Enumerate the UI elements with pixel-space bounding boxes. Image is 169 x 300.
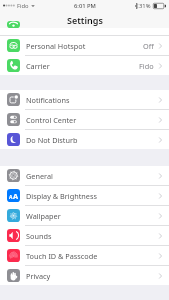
button[interactable]: General xyxy=(0,166,169,185)
staticText: Wallpaper xyxy=(26,211,61,221)
staticText: A xyxy=(13,191,19,201)
button[interactable]: Carrier xyxy=(0,56,169,75)
staticText: Off xyxy=(143,41,154,51)
staticText: Fido xyxy=(139,61,154,71)
staticText: 31% xyxy=(139,2,151,10)
staticText: A xyxy=(9,194,13,201)
staticText: Privacy xyxy=(26,271,51,281)
button[interactable]: Sounds xyxy=(0,226,169,245)
button[interactable]: Personal Hotspot xyxy=(0,36,169,55)
button[interactable]: Notifications xyxy=(0,90,169,109)
staticText: Touch ID & Passcode xyxy=(26,251,98,261)
button[interactable]: Touch ID & Passcode xyxy=(0,246,169,265)
staticText: Display & Brightness xyxy=(26,191,97,201)
staticText: Do Not Disturb xyxy=(26,135,78,145)
staticText: Notifications xyxy=(26,95,70,105)
staticText: General xyxy=(26,171,53,181)
button[interactable]: Privacy xyxy=(0,266,169,285)
staticText: Sounds xyxy=(26,231,52,241)
button[interactable]: Wallpaper xyxy=(0,206,169,225)
staticText: Personal Hotspot xyxy=(26,41,86,51)
staticText: Settings xyxy=(67,14,103,26)
staticText: Fido xyxy=(17,2,29,10)
button[interactable]: Control Center xyxy=(0,110,169,129)
staticText: Control Center xyxy=(26,115,77,125)
button[interactable]: A xyxy=(0,186,169,205)
button[interactable]: Do Not Disturb xyxy=(0,130,169,149)
staticText: Carrier xyxy=(26,61,50,71)
staticText: 6:01 PM xyxy=(74,2,96,10)
